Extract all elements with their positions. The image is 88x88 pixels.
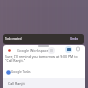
button[interactable]: Google Workspace bbox=[3, 45, 85, 78]
staticText: Call Ranjit bbox=[8, 81, 25, 86]
staticText: Google Tasks bbox=[11, 70, 31, 74]
staticText: "Call Ranjit." bbox=[5, 58, 26, 63]
button[interactable]: Attachment bbox=[48, 47, 55, 54]
staticText: Sure, I'll remind you tomorrow at 9:00 P… bbox=[5, 54, 78, 59]
staticText: Google Workspace bbox=[17, 48, 49, 53]
staticText: Task created bbox=[5, 37, 22, 41]
button[interactable]: Call Ranjit bbox=[3, 78, 85, 88]
staticText: Undo bbox=[70, 37, 79, 41]
button[interactable]: Account bbox=[65, 46, 72, 53]
button[interactable]: Call bbox=[75, 46, 81, 52]
button[interactable]: Task created bbox=[3, 34, 84, 44]
button[interactable]: Undo bbox=[70, 37, 79, 41]
